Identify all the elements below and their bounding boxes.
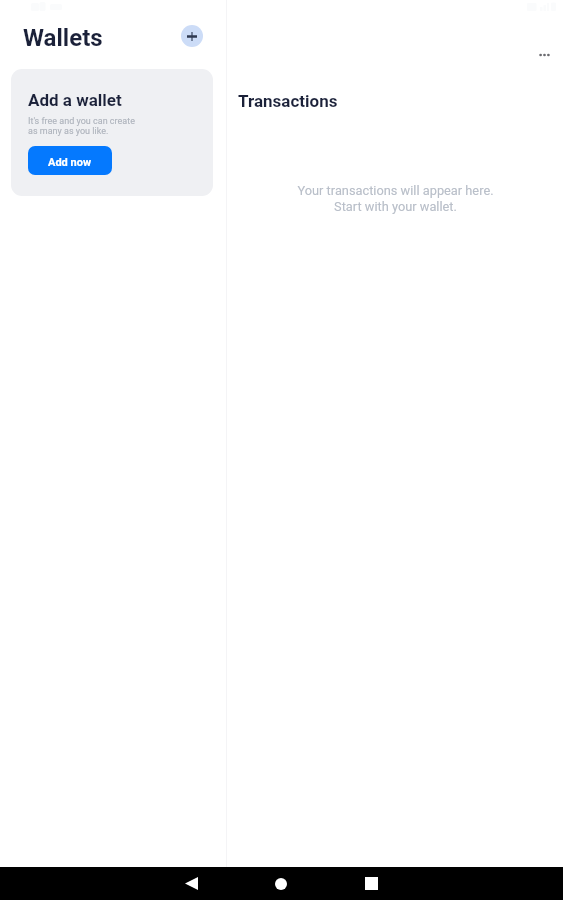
button[interactable]: Add a wallet <box>11 69 213 196</box>
button[interactable]: Add now <box>28 146 112 175</box>
staticText: Transactions <box>238 91 338 111</box>
staticText: Wallets <box>23 24 103 52</box>
button[interactable]: Home <box>251 867 311 900</box>
button[interactable]: Recent apps <box>341 867 401 900</box>
staticText: Your transactions will appear here. Star… <box>297 183 494 214</box>
button[interactable]: Back <box>161 867 221 900</box>
staticText: Add now <box>48 156 92 169</box>
button[interactable]: Add wallet <box>181 25 203 47</box>
staticText: It's free and you can create as many as … <box>28 116 135 136</box>
button[interactable]: More options <box>532 43 556 67</box>
staticText: Add a wallet <box>28 90 122 110</box>
